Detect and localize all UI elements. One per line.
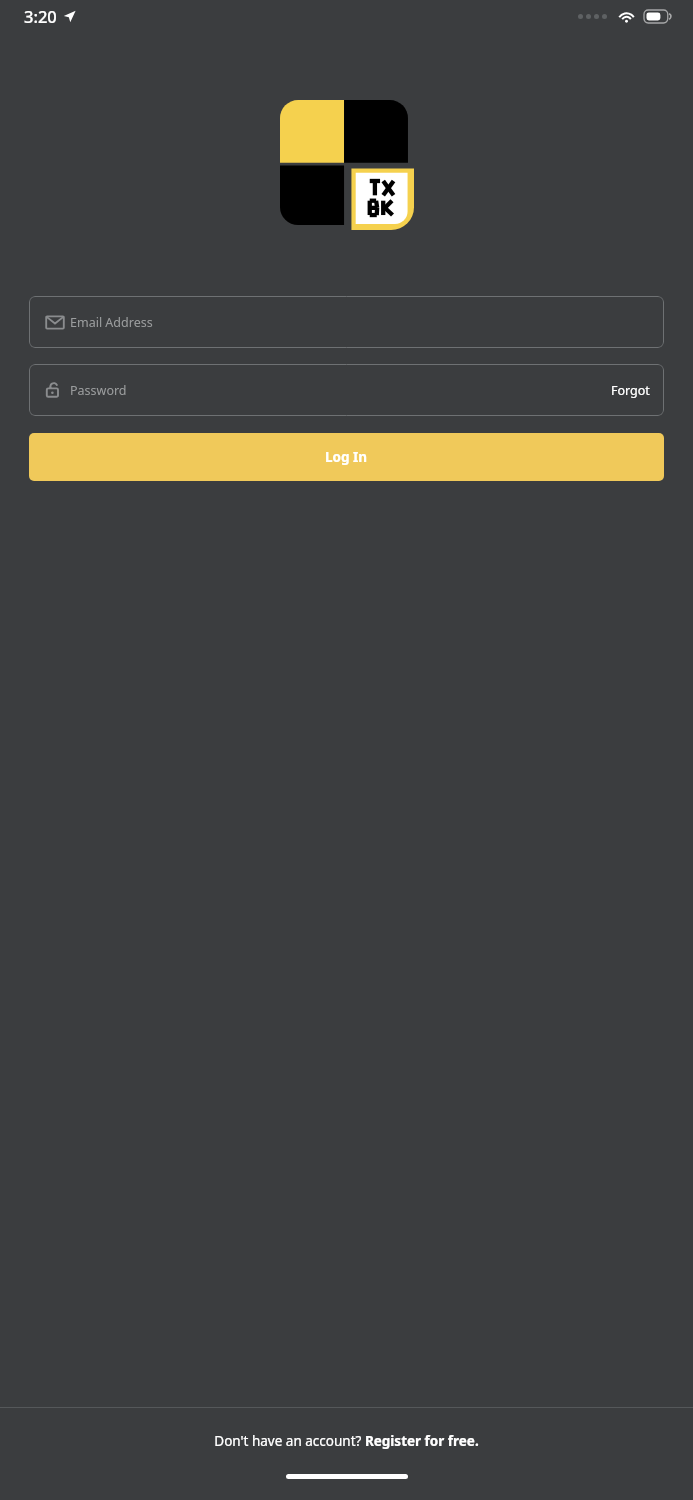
button[interactable]: Email	[29, 296, 664, 348]
button[interactable]: Forgot	[611, 382, 650, 399]
staticText: Password	[70, 382, 127, 399]
button[interactable]: Log In	[29, 433, 664, 481]
staticText: Email Address	[70, 314, 153, 331]
staticText: Don't have an account? Register for free…	[214, 1432, 479, 1450]
button[interactable]: Don't have an account? Register for free…	[214, 1432, 479, 1450]
other: Email	[44, 314, 66, 331]
other: Password	[44, 380, 64, 400]
staticText: Log In	[325, 448, 368, 466]
staticText: Forgot	[611, 382, 650, 399]
staticText: 3:20	[24, 5, 57, 27]
button[interactable]: Password	[29, 364, 664, 416]
